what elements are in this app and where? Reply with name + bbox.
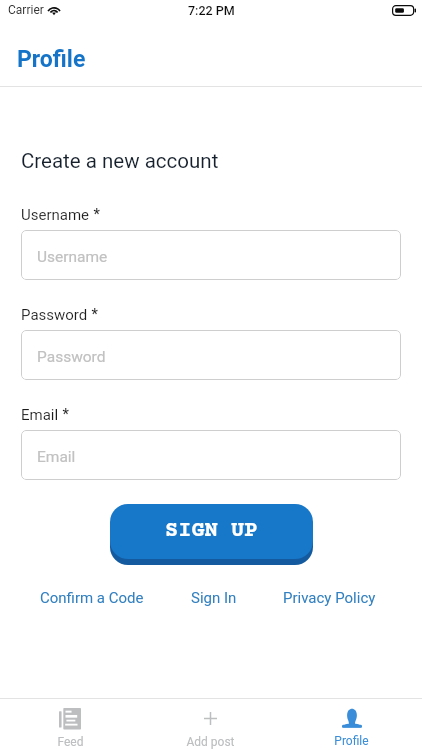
staticText: Email — [21, 406, 59, 424]
button[interactable]: Confirm a Code — [40, 589, 144, 607]
button[interactable]: SIGN UP — [110, 504, 313, 559]
staticText: Username — [21, 206, 90, 224]
staticText: Profile — [334, 734, 369, 748]
staticText: Email — [37, 448, 76, 466]
staticText: SIGN UP — [165, 519, 258, 544]
staticText: Privacy Policy — [283, 589, 376, 607]
button[interactable]: Sign In — [191, 589, 237, 607]
button[interactable]: Privacy Policy — [283, 589, 376, 607]
button[interactable]: Username — [21, 230, 401, 280]
staticText: Sign In — [191, 589, 237, 607]
button[interactable]: Email — [21, 430, 401, 480]
staticText: Profile — [17, 46, 86, 73]
button[interactable]: Profile — [281, 701, 422, 748]
button[interactable]: Add post — [140, 701, 281, 749]
button[interactable]: Password — [21, 330, 401, 380]
staticText: * — [59, 406, 69, 422]
staticText: Add post — [186, 735, 235, 749]
staticText: Create a new account — [21, 149, 219, 173]
staticText: Password — [37, 348, 106, 366]
staticText: Password — [21, 306, 88, 324]
staticText: Feed — [57, 735, 84, 749]
staticText: Carrier — [8, 3, 44, 17]
staticText: 7:22 PM — [188, 3, 235, 18]
staticText: Confirm a Code — [40, 589, 144, 607]
staticText: Username — [37, 248, 108, 266]
staticText: * — [88, 306, 98, 322]
staticText: * — [90, 206, 100, 222]
button[interactable]: Feed — [0, 701, 140, 749]
